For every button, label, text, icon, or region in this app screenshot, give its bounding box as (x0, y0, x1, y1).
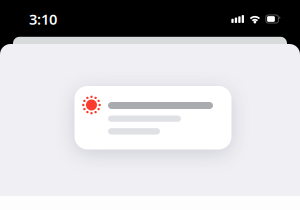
staticText: 3:10 (29, 9, 57, 29)
button[interactable]: Notification (74, 86, 231, 149)
